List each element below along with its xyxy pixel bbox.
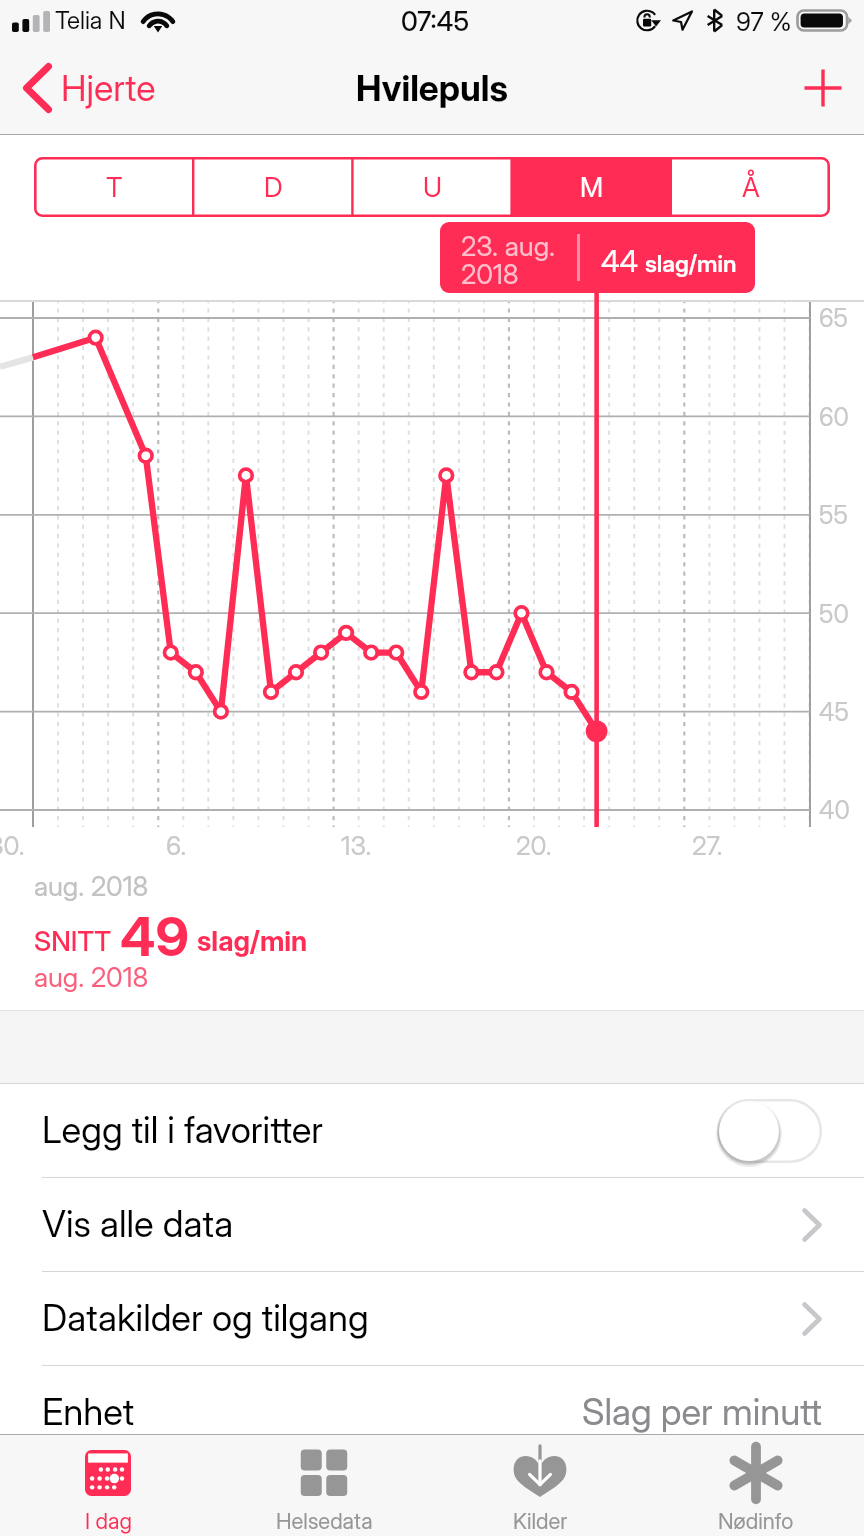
staticText: Legg til i favoritter	[42, 1108, 324, 1152]
button[interactable]: Add	[782, 56, 864, 120]
staticText: 6.	[166, 830, 187, 861]
staticText: aug. 2018	[34, 961, 149, 994]
button[interactable]: U	[353, 157, 512, 217]
staticText: 2018	[461, 258, 519, 291]
staticText: 97 %	[736, 6, 792, 37]
staticText: 27.	[692, 830, 723, 861]
staticText: Nødinfo	[718, 1508, 794, 1535]
staticText: I dag	[85, 1508, 132, 1535]
button[interactable]: D	[194, 157, 353, 217]
button[interactable]: Datakilder og tilgang	[0, 1272, 864, 1366]
staticText: Datakilder og tilgang	[42, 1296, 369, 1340]
staticText: Kilder	[513, 1508, 568, 1535]
staticText: 60	[819, 402, 849, 432]
staticText: 07:45	[401, 5, 470, 37]
button[interactable]: T	[34, 157, 194, 217]
staticText: 44	[601, 243, 639, 279]
staticText: 30.	[0, 830, 25, 861]
staticText: T	[106, 171, 123, 204]
staticText: Telia N	[55, 6, 126, 35]
button[interactable]: Vis alle data	[0, 1178, 864, 1272]
staticText: aug. 2018	[34, 870, 149, 903]
staticText: 40	[819, 795, 850, 825]
button[interactable]: Helsedata	[216, 1435, 432, 1536]
staticText: 49	[120, 904, 189, 969]
staticText: D	[264, 171, 283, 204]
staticText: 13.	[341, 830, 372, 861]
staticText: Enhet	[42, 1390, 135, 1434]
button[interactable]: Å	[671, 157, 830, 217]
button[interactable]: Enhet	[0, 1366, 864, 1460]
button[interactable]: I dag	[0, 1435, 216, 1536]
staticText: Hvilepuls	[356, 67, 508, 110]
staticText: Helsedata	[276, 1508, 373, 1535]
button[interactable]: Back to Hjerte	[0, 55, 174, 121]
staticText: 55	[819, 500, 848, 530]
staticText: 23. aug.	[461, 230, 555, 263]
staticText: 20.	[516, 830, 552, 861]
staticText: M	[580, 171, 604, 204]
staticText: Å	[742, 171, 760, 204]
staticText: Slag per minutt	[582, 1390, 822, 1434]
staticText: slag/min	[197, 924, 308, 957]
staticText: slag/min	[645, 249, 737, 277]
staticText: SNITT	[34, 924, 112, 957]
button[interactable]: Kilder	[432, 1435, 648, 1536]
staticText: 50	[819, 599, 849, 629]
button[interactable]: 23. aug.	[440, 222, 755, 293]
staticText: Vis alle data	[42, 1202, 234, 1246]
button[interactable]: Add to favorites toggle	[717, 1099, 822, 1163]
button[interactable]: M	[512, 157, 671, 217]
button[interactable]: Nødinfo	[648, 1435, 864, 1536]
staticText: 45	[819, 697, 849, 727]
staticText: U	[423, 171, 442, 204]
staticText: Hjerte	[61, 66, 156, 110]
staticText: 65	[819, 303, 849, 333]
button[interactable]: Legg til i favoritter	[0, 1084, 864, 1178]
